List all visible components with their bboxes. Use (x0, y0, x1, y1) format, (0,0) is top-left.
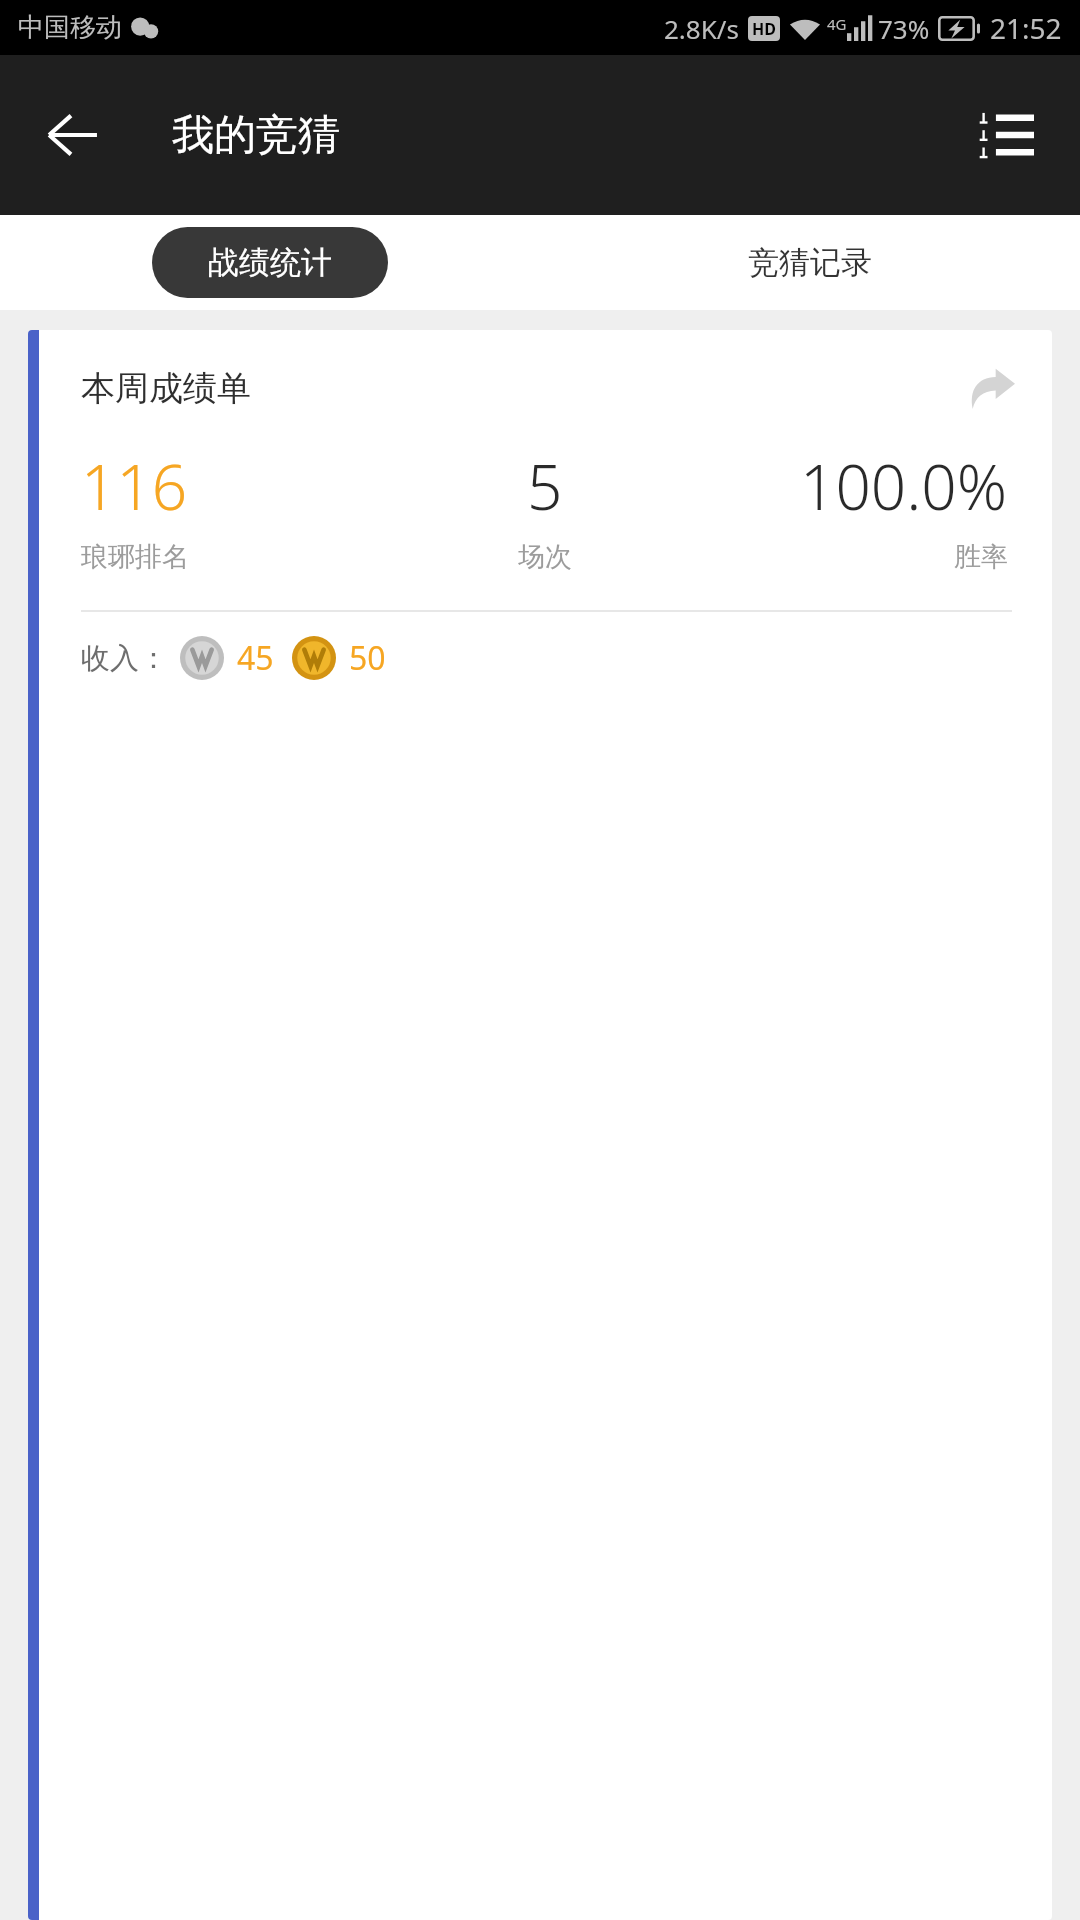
staticText: 琅琊排名 (81, 540, 189, 574)
button[interactable]: 竞猜记录 (540, 215, 1080, 310)
staticText: 胜率 (954, 540, 1008, 574)
staticText: 2.8K/s (664, 11, 739, 46)
staticText: 50 (349, 636, 386, 680)
staticText: 竞猜记录 (748, 243, 872, 282)
staticText: 21:52 (990, 9, 1062, 47)
button[interactable]: 返回 (24, 87, 120, 183)
button[interactable]: 排行榜 (958, 87, 1054, 183)
staticText: 收入： (81, 640, 168, 677)
staticText: 战绩统计 (208, 243, 332, 282)
staticText: 我的竞猜 (172, 109, 340, 162)
button[interactable]: 本周成绩单 (28, 330, 1052, 1920)
staticText: 本周成绩单 (81, 367, 251, 410)
staticText: 100.0% (800, 444, 1008, 528)
staticText: 场次 (518, 540, 572, 574)
staticText: 45 (237, 636, 274, 680)
button[interactable]: 战绩统计 (152, 227, 388, 298)
staticText: 中国移动 (18, 11, 122, 44)
staticText: 5 (527, 444, 563, 528)
staticText: 4G (827, 14, 847, 34)
button[interactable]: 分享 (960, 356, 1024, 420)
staticText: 73% (878, 11, 930, 46)
staticText: HD (752, 18, 776, 40)
staticText: 116 (81, 444, 188, 528)
